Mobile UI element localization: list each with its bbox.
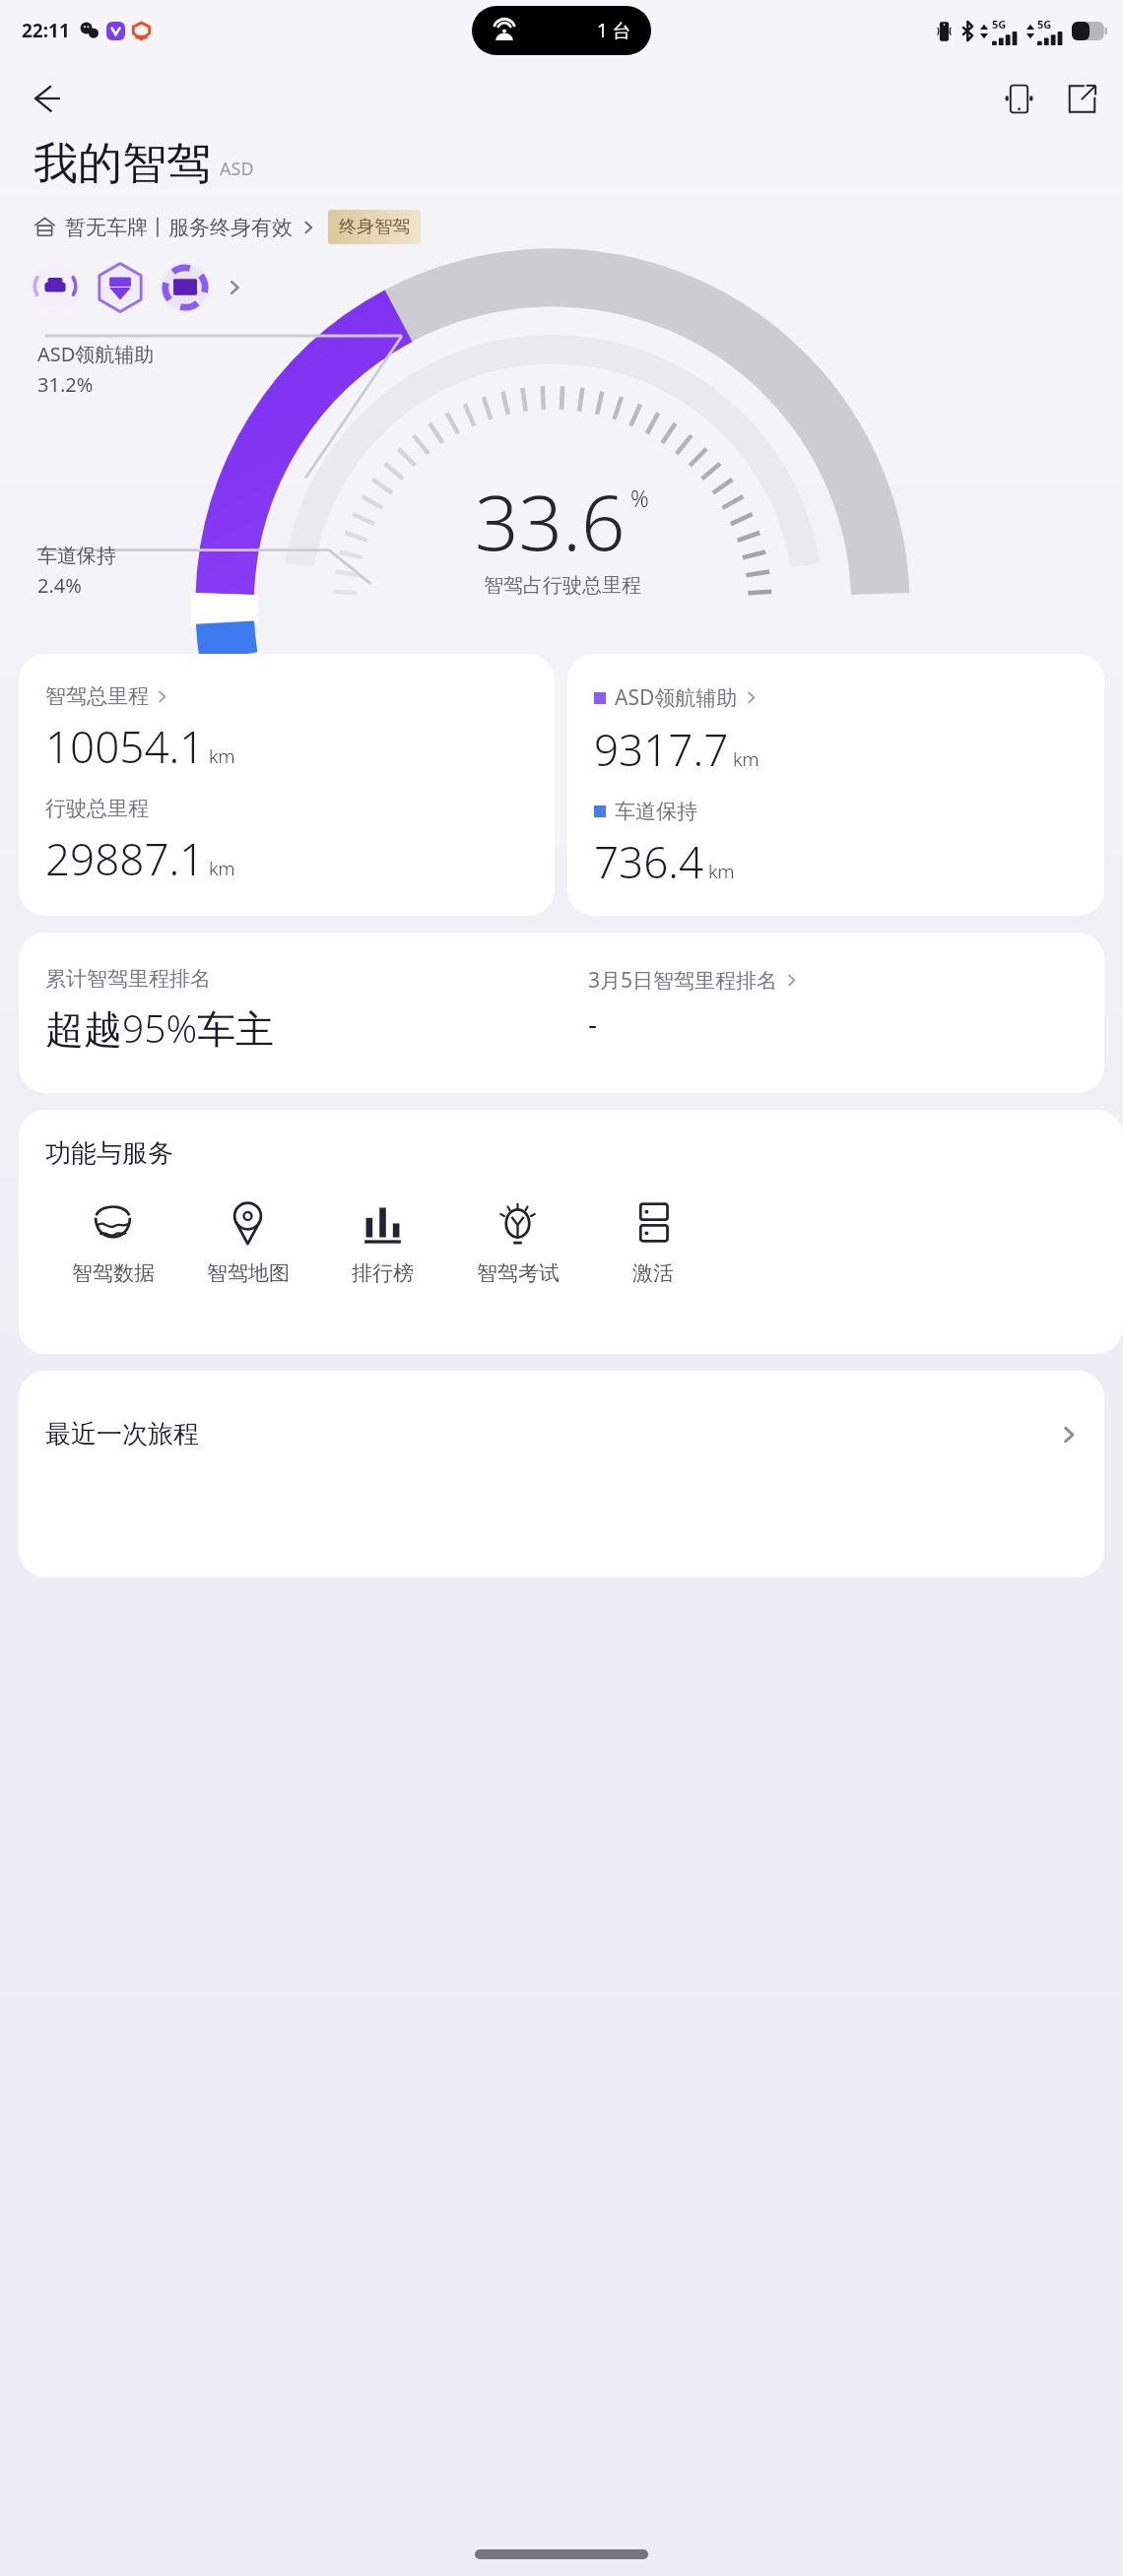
staticText: 智驾占行驶总里程 bbox=[484, 573, 641, 598]
staticText: 5G bbox=[992, 17, 1007, 32]
staticText: 智驾数据 bbox=[72, 1260, 155, 1286]
staticText: 我的智驾 bbox=[33, 136, 211, 192]
staticText: 智驾总里程 bbox=[45, 683, 149, 709]
staticText: 智驾考试 bbox=[477, 1260, 560, 1286]
staticText: 车道保持 bbox=[615, 799, 697, 824]
staticText: 10054.1 bbox=[45, 717, 205, 776]
staticText: ASD领航辅助 bbox=[615, 683, 738, 712]
staticText: 智驾地图 bbox=[207, 1260, 290, 1286]
staticText: 功能与服务 bbox=[45, 1137, 173, 1170]
staticText: 1 台 bbox=[597, 18, 631, 43]
staticText: 终身智驾 bbox=[339, 216, 410, 238]
staticText: 736.4 bbox=[594, 832, 704, 891]
button[interactable]: ASD领航辅助 bbox=[567, 654, 1104, 916]
staticText: 排行榜 bbox=[352, 1260, 414, 1286]
staticText: 超越95%车主 bbox=[45, 1001, 275, 1054]
button[interactable]: 排行榜 bbox=[315, 1199, 450, 1286]
button[interactable]: 最近一次旅程 bbox=[19, 1371, 1104, 1578]
staticText: 9317.7 bbox=[594, 720, 729, 779]
button[interactable]: 累计智驾里程排名 bbox=[19, 933, 1104, 1093]
button[interactable]: 智驾考试 bbox=[450, 1199, 585, 1286]
staticText: ASD bbox=[220, 157, 254, 181]
staticText: ASD领航辅助 bbox=[37, 341, 155, 367]
button[interactable]: 激活 bbox=[585, 1199, 720, 1286]
staticText: 暂无车牌丨服务终身有效 bbox=[65, 215, 293, 240]
staticText: km bbox=[209, 856, 235, 881]
staticText: 累计智驾里程排名 bbox=[45, 966, 211, 992]
staticText: 29887.1 bbox=[45, 829, 205, 888]
staticText: 2.4% bbox=[37, 572, 82, 599]
staticText: km bbox=[708, 859, 735, 884]
staticText: 激活 bbox=[632, 1260, 674, 1286]
button[interactable]: Share bbox=[1056, 73, 1107, 124]
staticText: 3月5日智驾里程排名 bbox=[588, 966, 778, 995]
staticText: km bbox=[209, 743, 235, 769]
staticText: 31.2% bbox=[37, 371, 94, 398]
button[interactable]: Back bbox=[22, 73, 73, 124]
staticText: 5G bbox=[1037, 17, 1052, 32]
staticText: - bbox=[588, 1004, 598, 1042]
button[interactable]: 暂无车牌丨服务终身有效 bbox=[33, 210, 421, 244]
button[interactable]: 智驾数据 bbox=[45, 1199, 180, 1286]
staticText: % bbox=[630, 483, 649, 513]
button[interactable]: 智驾地图 bbox=[180, 1199, 315, 1286]
staticText: 最近一次旅程 bbox=[45, 1418, 199, 1450]
button[interactable]: 智驾总里程 bbox=[19, 654, 555, 916]
button[interactable] bbox=[30, 262, 242, 313]
staticText: km bbox=[733, 746, 760, 772]
staticText: 22:11 bbox=[22, 18, 70, 43]
staticText: 车道保持 bbox=[37, 544, 116, 568]
button[interactable]: Vehicle bbox=[993, 73, 1044, 124]
staticText: 行驶总里程 bbox=[45, 796, 149, 821]
staticText: 33.6 bbox=[475, 469, 626, 573]
